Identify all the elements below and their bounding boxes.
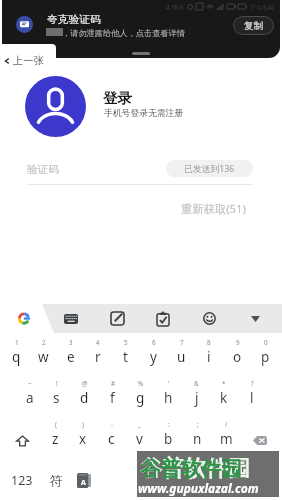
button[interactable]: 9: [223, 338, 251, 379]
button[interactable]: :: [154, 420, 183, 461]
staticText: w: [38, 348, 49, 366]
staticText: 0: [264, 338, 268, 346]
button[interactable]: 0: [251, 338, 279, 379]
button[interactable]: ': [154, 379, 182, 420]
button[interactable]: 3: [57, 338, 84, 379]
staticText: ?: [251, 379, 254, 387]
staticText: 重新获取(51): [181, 201, 246, 216]
staticText: /: [225, 420, 228, 428]
staticText: 9: [236, 338, 240, 346]
staticText: e: [67, 348, 75, 366]
staticText: ，请勿泄露给他人，点击查看详情: [62, 28, 185, 38]
button[interactable]: 8: [195, 338, 223, 379]
button[interactable]: 1: [3, 338, 30, 379]
button[interactable]: Edit: [94, 304, 140, 333]
staticText: 4: [96, 338, 100, 346]
staticText: 谷普软件园: [140, 455, 250, 483]
staticText: f: [110, 389, 115, 407]
button[interactable]: %: [126, 379, 154, 420]
button[interactable]: [0, 44, 56, 73]
staticText: c: [108, 430, 115, 448]
staticText: u: [177, 348, 186, 366]
button[interactable]: ~: [16, 379, 43, 420]
button[interactable]: Emoji: [186, 304, 232, 333]
staticText: 6: [152, 338, 156, 346]
staticText: _: [138, 420, 141, 428]
staticText: i: [207, 348, 211, 366]
staticText: 谷普软件园: [140, 456, 242, 482]
button[interactable]: 重新获取(51): [178, 198, 249, 219]
button[interactable]: &: [182, 379, 210, 420]
button[interactable]: !: [43, 379, 70, 420]
staticText: *: [222, 379, 226, 387]
staticText: 夸克验证码: [47, 13, 101, 27]
button[interactable]: 6: [139, 338, 167, 379]
staticText: 3: [69, 338, 73, 346]
staticText: #: [111, 379, 115, 387]
staticText: 登录: [103, 89, 132, 107]
button[interactable]: _: [125, 420, 154, 461]
staticText: a: [26, 389, 34, 407]
button[interactable]: 符: [44, 460, 68, 500]
staticText: 验证码: [27, 163, 60, 177]
staticText: 1: [15, 338, 19, 346]
button[interactable]: 复制: [233, 16, 274, 35]
button[interactable]: 123: [0, 460, 44, 500]
button[interactable]: Switch language: [68, 460, 99, 500]
staticText: z: [52, 430, 59, 448]
button[interactable]: Backspace: [241, 420, 279, 461]
button[interactable]: #: [98, 379, 126, 420]
staticText: @: [82, 379, 88, 387]
button[interactable]: *: [210, 379, 238, 420]
button[interactable]: (: [41, 420, 69, 461]
staticText: m: [220, 430, 233, 448]
staticText: 符: [50, 473, 63, 489]
button[interactable]: Shift: [3, 420, 41, 461]
staticText: A: [81, 478, 86, 488]
button[interactable]: 2: [30, 338, 57, 379]
button[interactable]: Keyboard: [48, 304, 94, 333]
staticText: 手机号登录无需注册: [104, 108, 184, 119]
button[interactable]: Google: [15, 304, 33, 333]
button[interactable]: ): [69, 420, 97, 461]
button[interactable]: 7: [167, 338, 195, 379]
staticText: k: [220, 389, 228, 407]
staticText: g: [136, 389, 145, 407]
button[interactable]: /: [212, 420, 241, 461]
button[interactable]: @: [70, 379, 98, 420]
staticText: %: [138, 379, 144, 387]
button[interactable]: English: [99, 460, 282, 500]
button[interactable]: 5: [111, 338, 139, 379]
staticText: English: [174, 474, 207, 487]
staticText: j: [195, 389, 199, 407]
staticText: p: [261, 348, 270, 366]
staticText: 7: [180, 338, 184, 346]
staticText: s: [53, 389, 60, 407]
staticText: (: [55, 420, 57, 428]
staticText: www.gupuxlazal.com: [138, 480, 259, 496]
staticText: t: [123, 348, 128, 366]
staticText: :: [168, 420, 170, 428]
staticText: 已发送到136: [184, 163, 235, 175]
staticText: ': [168, 379, 170, 387]
staticText: !: [56, 379, 58, 387]
staticText: l: [250, 389, 254, 407]
staticText: x: [79, 430, 87, 448]
staticText: n: [193, 430, 202, 448]
button[interactable]: Clipboard: [140, 304, 186, 333]
staticText: ): [82, 420, 84, 428]
staticText: ;: [197, 420, 199, 428]
staticText: y: [150, 348, 157, 366]
button[interactable]: 4: [84, 338, 111, 379]
button[interactable]: -: [97, 420, 125, 461]
staticText: o: [233, 348, 242, 366]
staticText: 123: [11, 472, 33, 489]
staticText: 下午3:46: [250, 3, 275, 11]
button[interactable]: 已发送到136: [166, 160, 253, 177]
staticText: h: [164, 389, 173, 407]
button[interactable]: More options: [232, 304, 278, 333]
button[interactable]: ;: [183, 420, 212, 461]
staticText: -: [111, 420, 113, 428]
button[interactable]: ?: [238, 379, 266, 420]
staticText: d: [80, 389, 89, 407]
